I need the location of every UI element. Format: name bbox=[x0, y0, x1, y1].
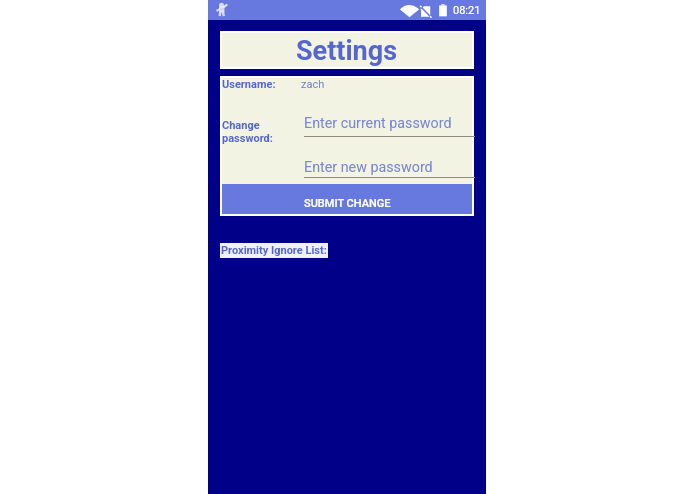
staticText: zach bbox=[301, 78, 325, 91]
staticText: Settings bbox=[296, 35, 398, 67]
button[interactable]: Settings bbox=[222, 33, 472, 67]
staticText: Username: bbox=[222, 78, 276, 91]
staticText: 08:21 bbox=[453, 4, 481, 17]
staticText: Enter current password bbox=[304, 115, 452, 132]
staticText: Enter new password bbox=[304, 159, 433, 176]
button[interactable]: Proximity Ignore List: bbox=[221, 243, 327, 258]
staticText: Change password: bbox=[222, 119, 273, 145]
button[interactable]: SUBMIT CHANGE bbox=[222, 184, 472, 214]
other: App icon bbox=[216, 2, 228, 17]
button[interactable]: Enter current password bbox=[304, 115, 475, 137]
staticText: Proximity Ignore List: bbox=[221, 244, 327, 257]
button[interactable]: Enter new password bbox=[304, 159, 475, 178]
staticText: SUBMIT CHANGE bbox=[304, 197, 391, 210]
